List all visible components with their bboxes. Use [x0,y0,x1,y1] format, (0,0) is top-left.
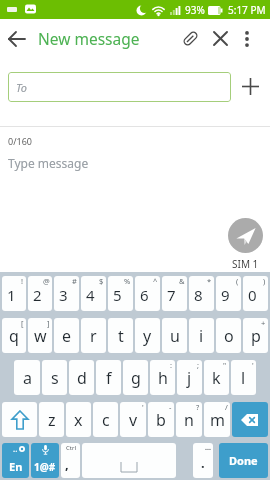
button[interactable]: b [148,402,174,437]
staticText: & [179,276,185,286]
staticText: 3 [59,285,68,305]
staticText: 1@# [34,460,56,474]
staticText: d [77,367,87,389]
staticText: ' [142,402,144,412]
button[interactable] [232,402,268,437]
button[interactable] [235,19,259,58]
button[interactable]: 1 [2,276,26,311]
button[interactable]: r [81,318,106,353]
button[interactable] [0,19,34,58]
button[interactable]: o [216,318,241,353]
button[interactable]: f [96,360,121,395]
button[interactable]: a [14,360,40,395]
button[interactable]: p [243,318,268,353]
button[interactable]: x [66,402,91,437]
staticText: x [74,409,83,431]
button[interactable]: v [120,402,146,437]
button[interactable]: Ctrl [61,443,80,478]
staticText: c [102,409,110,431]
staticText: Type message [8,155,89,171]
button[interactable]: k [204,360,229,395]
staticText: 8 [194,285,203,305]
staticText: ) [263,276,266,286]
button[interactable]: g [123,360,148,395]
staticText: 5:17 PM [228,3,266,17]
button[interactable]: m [204,402,230,437]
staticText: o [224,325,234,347]
staticText: k [212,367,221,389]
button[interactable]: 2 [28,276,52,311]
staticText: @ [43,276,50,286]
button[interactable] [175,19,205,58]
button[interactable]: d [69,360,94,395]
staticText: s [51,367,59,389]
button[interactable]: n [176,402,202,437]
staticText: % [124,276,131,286]
staticText: b [156,409,166,431]
staticText: # [72,276,77,286]
staticText: n [184,409,194,431]
staticText: a [23,367,32,389]
staticText: : [170,360,173,370]
button[interactable]: e [54,318,79,353]
button[interactable]: 9 [216,276,241,311]
button[interactable]: 6 [135,276,160,311]
staticText: v [129,409,138,431]
button[interactable]: 0 [243,276,268,311]
staticText: 93% [185,3,205,17]
staticText: l [241,367,246,389]
staticText: To [16,80,27,95]
staticText: ^ [153,276,158,286]
staticText: z [48,409,56,431]
button[interactable]: 4 [81,276,106,311]
button[interactable]: En [2,443,29,478]
button[interactable]: w [28,318,52,353]
staticText: g [131,367,141,389]
button[interactable]: c [93,402,118,437]
staticText: y [143,325,152,347]
staticText: . [201,454,205,472]
button[interactable]: q [2,318,26,353]
button[interactable]: Done [219,443,268,478]
staticText: u [170,325,180,347]
button[interactable]: s [42,360,67,395]
staticText: r [90,325,97,347]
staticText: e [62,325,72,347]
button[interactable]: 7 [162,276,187,311]
staticText: SIM 1 [232,257,259,271]
staticText: * [207,276,212,286]
staticText: Ctrl [66,444,76,452]
staticText: [ [21,318,24,328]
staticText: 6 [140,285,149,305]
staticText: h [158,367,168,389]
staticText: ... [205,443,211,453]
staticText: + [261,318,266,328]
button[interactable] [82,443,176,478]
button[interactable] [205,19,235,58]
button[interactable] [228,218,263,253]
staticText: 5 [113,285,122,305]
button[interactable]: t [108,318,133,353]
staticText: 0 [248,285,257,305]
button[interactable]: y [135,318,160,353]
staticText: / [225,402,228,412]
button[interactable]: l [231,360,256,395]
button[interactable]: u [162,318,187,353]
staticText: En [9,459,23,474]
button[interactable]: j [177,360,202,395]
button[interactable]: 3 [54,276,79,311]
button[interactable]: To [8,72,231,102]
staticText: 4 [86,285,95,305]
button[interactable] [2,402,37,437]
button[interactable]: i [189,318,214,353]
staticText: m [210,409,225,431]
button[interactable]: h [150,360,175,395]
button[interactable]: 1@# [31,443,59,478]
button[interactable]: 5 [108,276,133,311]
staticText: 2 [33,285,42,305]
button[interactable]: 8 [189,276,214,311]
button[interactable]: ... [193,443,213,478]
staticText: - [169,402,172,412]
button[interactable] [231,67,270,106]
button[interactable]: z [39,402,64,437]
